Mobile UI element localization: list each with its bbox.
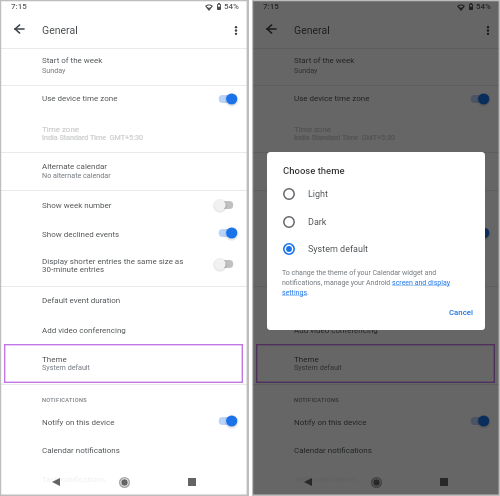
button[interactable]: Recent apps (182, 472, 202, 492)
button[interactable] (0, 384, 249, 414)
staticText: 7:15 (263, 2, 279, 11)
staticText: Cancel (449, 308, 473, 317)
button[interactable] (0, 153, 249, 190)
staticText: Calendar notifications (294, 446, 372, 455)
button[interactable] (267, 180, 485, 208)
button[interactable] (252, 414, 500, 443)
staticText: Use device time zone (294, 94, 370, 103)
staticText: Default event duration (294, 296, 373, 305)
button[interactable]: Navigate up (8, 18, 30, 40)
staticText: Dark (308, 217, 327, 228)
staticText: Task notifications (294, 475, 358, 484)
staticText: Task notifications (42, 475, 106, 484)
staticText: Show week number (42, 201, 112, 210)
button[interactable] (252, 86, 500, 116)
staticText: Default event duration (42, 296, 121, 305)
staticText: Sunday (42, 66, 66, 74)
staticText: Start of the week (42, 56, 103, 65)
button[interactable] (267, 208, 485, 236)
staticText: Alternate calendar (294, 162, 360, 171)
staticText: No alternate calendar (42, 171, 111, 179)
staticText: Calendar notifications (42, 446, 120, 455)
staticText: General (294, 24, 330, 36)
button[interactable] (252, 472, 500, 494)
staticText: 30-minute entries (294, 265, 357, 274)
button[interactable]: Home (114, 472, 134, 492)
staticText: Light (308, 189, 328, 200)
staticText: Time zone (42, 125, 80, 134)
staticText: No alternate calendar (294, 171, 363, 179)
button[interactable] (0, 248, 249, 286)
button[interactable]: Navigate up (260, 18, 282, 40)
staticText: Sunday (294, 66, 318, 74)
button[interactable] (252, 49, 500, 85)
button[interactable] (0, 49, 249, 85)
staticText: System default (308, 244, 369, 255)
button[interactable] (0, 191, 249, 220)
staticText: Start of the week (294, 56, 355, 65)
staticText: 54% (476, 2, 491, 11)
button[interactable]: More options (225, 19, 246, 40)
staticText: Notify on this device (42, 418, 115, 427)
staticText: Show declined events (42, 230, 120, 239)
staticText: To change the theme of your Calendar wid… (282, 269, 437, 277)
staticText: Time zone (294, 125, 332, 134)
button[interactable] (252, 191, 500, 220)
button[interactable]: Recent apps (434, 472, 454, 492)
staticText: Theme (42, 355, 67, 364)
staticText: India Standard Time GMT+5:30 (294, 133, 395, 141)
staticText: settings. (282, 289, 309, 297)
staticText: System default (294, 363, 342, 371)
button[interactable]: Cancel (445, 302, 477, 322)
staticText: Display shorter entries the same size as (42, 257, 184, 266)
staticText: Add video conferencing (42, 326, 126, 335)
button[interactable] (4, 344, 243, 383)
button[interactable] (252, 220, 500, 248)
button[interactable] (0, 116, 249, 152)
button[interactable] (0, 414, 249, 443)
button[interactable]: More options (477, 19, 498, 40)
button[interactable]: Back (298, 472, 318, 492)
staticText: Choose theme (283, 165, 345, 176)
button[interactable] (0, 443, 249, 472)
staticText: notifications, manage your Android scree… (282, 279, 450, 287)
staticText: 30-minute entries (42, 265, 105, 274)
staticText: India Standard Time GMT+5:30 (42, 133, 143, 141)
button[interactable] (0, 472, 249, 494)
staticText: General (42, 24, 78, 36)
staticText: Use device time zone (42, 94, 118, 103)
staticText: 7:15 (11, 2, 27, 11)
button[interactable] (252, 248, 500, 286)
staticText: NOTIFICATIONS (42, 397, 88, 404)
button[interactable] (252, 287, 500, 316)
staticText: Add video conferencing (294, 326, 378, 335)
button[interactable] (0, 220, 249, 248)
button[interactable] (252, 443, 500, 472)
button[interactable]: Home (366, 472, 386, 492)
staticText: NOTIFICATIONS (294, 397, 340, 404)
button[interactable] (0, 86, 249, 116)
button[interactable] (252, 384, 500, 414)
staticText: System default (42, 363, 90, 371)
button[interactable] (267, 235, 485, 263)
staticText: Alternate calendar (42, 162, 108, 171)
button[interactable] (256, 344, 495, 383)
button[interactable] (252, 116, 500, 152)
staticText: Theme (294, 355, 319, 364)
staticText: Notify on this device (294, 418, 367, 427)
button[interactable] (252, 316, 500, 344)
staticText: 54% (224, 2, 239, 11)
button[interactable] (252, 153, 500, 190)
button[interactable] (0, 287, 249, 316)
button[interactable] (0, 316, 249, 344)
button[interactable]: Back (46, 472, 66, 492)
